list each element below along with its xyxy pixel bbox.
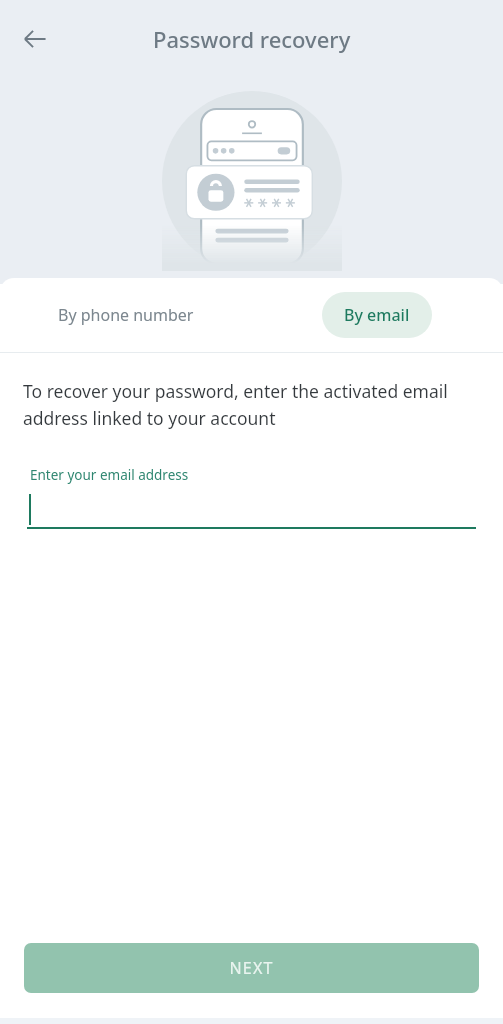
staticText: To recover your password, enter the acti… <box>23 379 480 430</box>
button[interactable]: NEXT <box>24 943 479 993</box>
staticText: NEXT <box>229 957 274 979</box>
button[interactable] <box>27 491 476 527</box>
staticText: Password recovery <box>153 24 351 54</box>
button[interactable]: By phone number <box>0 278 251 352</box>
button[interactable]: Back <box>12 16 58 62</box>
staticText: Enter your email address <box>30 466 189 484</box>
button[interactable]: By email <box>322 292 432 338</box>
staticText: By email <box>344 304 410 326</box>
staticText: By phone number <box>58 304 194 326</box>
